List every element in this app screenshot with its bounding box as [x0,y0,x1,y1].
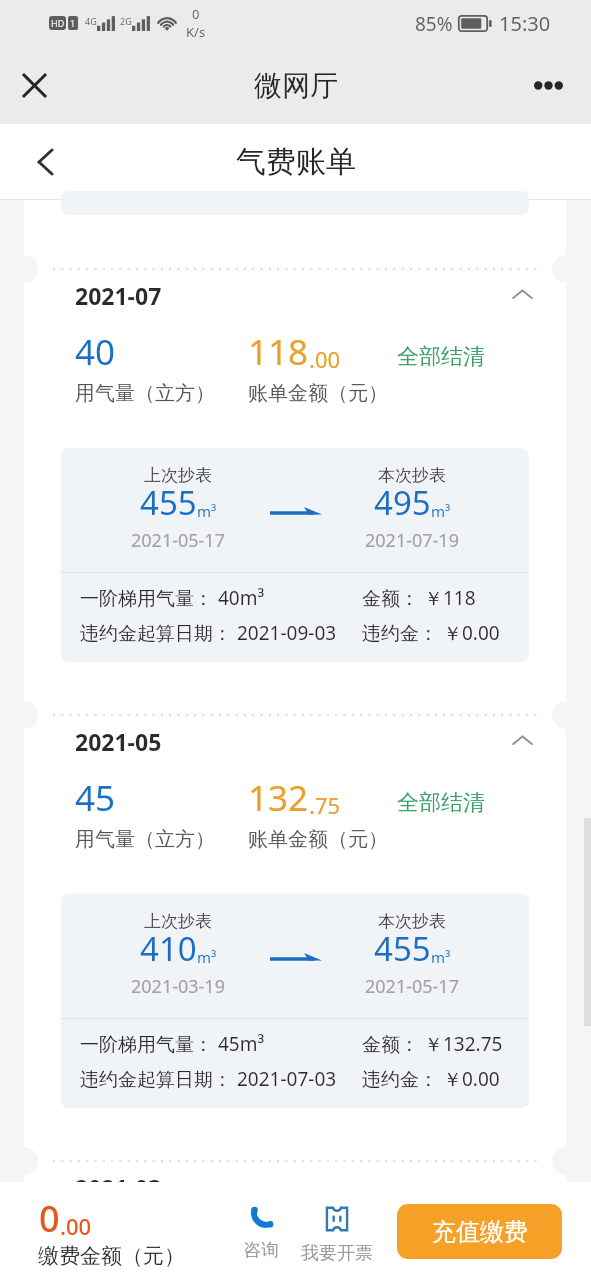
staticText: 金额： ￥118 [362,585,476,611]
staticText: 账单金额（元） [248,827,388,852]
staticText: 金额： ￥132.75 [362,1031,503,1057]
button[interactable]: 2021-05 [24,704,566,1150]
staticText: 咨询 [243,1239,279,1262]
staticText: 一阶梯用气量： 45m³ [80,1031,265,1057]
staticText: 2021-07 [75,280,162,311]
staticText: 2021-05-17 [365,974,459,999]
staticText: 2021-05 [75,726,162,757]
staticText: m³ [431,947,451,967]
staticText: 全部结清 [397,789,485,817]
staticText: 用气量（立方） [75,381,215,406]
staticText: 15:30 [499,10,551,37]
button[interactable]: Consult [221,1206,301,1262]
staticText: 1 [70,17,76,29]
staticText: 495 [374,480,431,525]
button[interactable]: Invoice [297,1205,377,1265]
staticText: 2021-03-19 [131,974,225,999]
staticText: 2021-05-17 [131,528,225,553]
staticText: 本次抄表 [378,911,446,932]
staticText: 410 [140,926,197,971]
staticText: 违约金： ￥0.00 [362,1066,500,1092]
staticText: 账单金额（元） [248,381,388,406]
staticText: 违约金： ￥0.00 [362,620,500,646]
staticText: 85% [415,11,453,37]
button[interactable]: 2021-07 [24,258,566,704]
staticText: 2G [120,15,132,27]
staticText: 气费账单 [236,143,356,181]
staticText: 用气量（立方） [75,827,215,852]
staticText: .00 [309,344,341,374]
staticText: K/s [186,23,206,41]
staticText: 微网厅 [254,68,338,103]
staticText: .00 [60,1211,92,1241]
button[interactable]: More options [522,59,574,111]
other: Invoice [323,1205,351,1233]
staticText: 4G [85,15,97,27]
staticText: 45 [75,774,116,822]
staticText: 充值缴费 [432,1217,528,1247]
staticText: 上次抄表 [144,465,212,486]
staticText: 全部结清 [397,343,485,371]
staticText: 2021-03 [75,1172,162,1182]
staticText: 0 [192,5,200,23]
other: Consult [249,1206,273,1230]
button[interactable]: Close [8,59,60,111]
staticText: m³ [197,947,217,967]
staticText: 上次抄表 [144,911,212,932]
staticText: 40 [75,328,116,376]
staticText: 违约金起算日期： 2021-07-03 [80,1066,337,1092]
staticText: 118 [248,328,309,376]
button[interactable]: 充值缴费 [397,1204,562,1259]
staticText: m³ [197,501,217,521]
staticText: 132 [248,774,309,822]
staticText: 我要开票 [301,1242,373,1265]
staticText: 缴费金额（元） [38,1243,185,1269]
staticText: 455 [374,926,431,971]
staticText: 一阶梯用气量： 40m³ [80,585,265,611]
staticText: .75 [309,790,341,820]
staticText: 违约金起算日期： 2021-09-03 [80,620,337,646]
staticText: 2021-07-19 [365,528,459,553]
button[interactable]: Back [19,136,71,188]
staticText: 455 [140,480,197,525]
staticText: 0 [39,1194,60,1243]
staticText: 本次抄表 [378,465,446,486]
staticText: m³ [431,501,451,521]
staticText: HD [51,17,65,29]
